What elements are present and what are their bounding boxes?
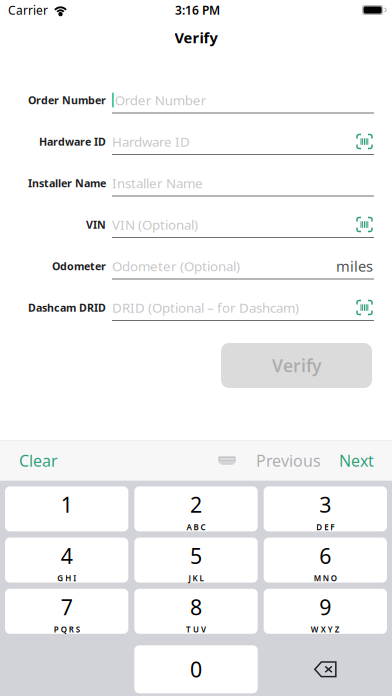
button[interactable]: Verify — [221, 343, 372, 388]
staticText: Installer Name — [112, 174, 203, 192]
staticText: DRID (Optional – for Dashcam) — [112, 299, 299, 316]
staticText: Order Number — [115, 91, 207, 109]
button[interactable]: Delete — [264, 645, 387, 693]
staticText: Carrier — [8, 2, 48, 18]
staticText: VIN — [86, 217, 106, 232]
staticText: Order Number — [28, 93, 106, 107]
button[interactable]: 4 — [5, 538, 128, 583]
staticText — [66, 522, 68, 532]
button[interactable]: 1 — [5, 486, 128, 531]
staticText: 0 — [190, 655, 202, 683]
staticText: Previous — [256, 450, 321, 471]
staticText: 8 — [190, 593, 202, 621]
staticText: M N O — [314, 573, 337, 584]
staticText: J K L — [188, 573, 203, 584]
button[interactable]: Next — [339, 450, 374, 471]
staticText: G H I — [57, 573, 76, 584]
button[interactable]: Scan barcode for Dashcam DRID — [356, 299, 373, 315]
button[interactable]: 8 — [134, 589, 258, 634]
staticText: Next — [339, 450, 374, 471]
staticText: A B C — [186, 522, 205, 532]
staticText: Odometer (Optional) — [112, 257, 240, 275]
staticText: W X Y Z — [311, 624, 340, 635]
staticText: 3 — [319, 490, 331, 519]
button[interactable]: Scan barcode for Hardware ID — [356, 133, 373, 149]
staticText: 9 — [319, 593, 331, 621]
staticText: T U V — [186, 624, 206, 635]
button[interactable]: 7 — [5, 589, 128, 634]
staticText: P Q R S — [54, 624, 80, 635]
staticText: Hardware ID — [39, 134, 106, 149]
staticText: 4 — [61, 542, 73, 570]
staticText: Clear — [19, 450, 58, 471]
staticText: Dashcam DRID — [28, 300, 106, 315]
staticText: 2 — [190, 490, 202, 519]
button[interactable]: 5 — [134, 538, 258, 583]
button[interactable]: Scan barcode for VIN — [356, 216, 373, 232]
staticText: Hardware ID — [112, 133, 190, 150]
staticText: 6 — [319, 542, 331, 570]
staticText: VIN (Optional) — [112, 216, 198, 233]
staticText: miles — [336, 256, 373, 276]
button[interactable]: Previous — [256, 450, 321, 471]
staticText: 5 — [190, 542, 202, 570]
staticText: D E F — [316, 522, 334, 532]
staticText: 1 — [61, 490, 73, 519]
staticText: Odometer — [52, 259, 106, 273]
button[interactable]: 0 — [134, 645, 258, 693]
button[interactable]: 3 — [264, 486, 387, 531]
staticText: Installer Name — [28, 176, 106, 190]
staticText: 3:16 PM — [175, 2, 220, 18]
button[interactable]: Hide keyboard — [217, 456, 237, 466]
staticText: 7 — [61, 593, 73, 621]
staticText: Verify — [174, 28, 217, 47]
button[interactable]: 2 — [134, 486, 258, 531]
button[interactable]: 6 — [264, 538, 387, 583]
button[interactable]: 9 — [264, 589, 387, 634]
staticText: Verify — [272, 354, 321, 377]
button[interactable]: Clear — [19, 450, 58, 471]
